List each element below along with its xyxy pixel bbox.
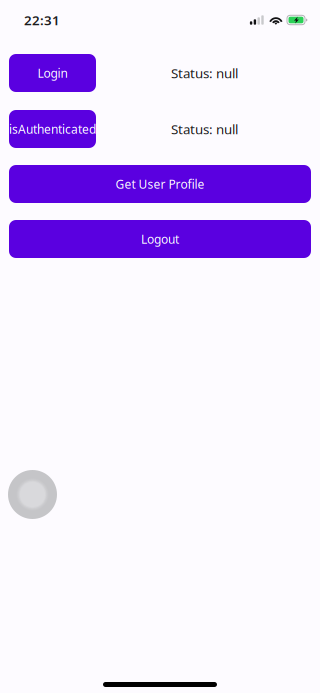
staticText: Logout <box>141 231 179 247</box>
button[interactable]: Logout <box>9 220 311 258</box>
staticText: 22:31 <box>24 11 60 29</box>
staticText: Login <box>37 65 67 81</box>
button[interactable]: isAuthenticated <box>9 110 96 148</box>
staticText: Get User Profile <box>115 176 204 192</box>
button[interactable]: Get User Profile <box>9 165 311 203</box>
staticText: isAuthenticated <box>9 121 96 137</box>
staticText: Status: null <box>171 120 238 138</box>
button[interactable]: Login <box>9 54 96 92</box>
staticText: Status: null <box>171 64 238 82</box>
